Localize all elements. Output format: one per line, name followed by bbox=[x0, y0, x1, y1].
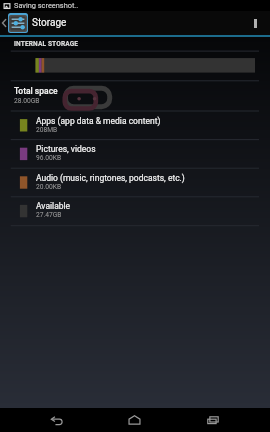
staticText: Pictures, videos bbox=[36, 144, 96, 154]
button[interactable]: Audio (music, ringtones, podcasts, etc.) bbox=[0, 169, 270, 197]
staticText: 28.00GB bbox=[14, 97, 40, 105]
staticText: Apps (app data & media content) bbox=[36, 116, 161, 126]
staticText: Saving screenshot.. bbox=[14, 1, 79, 10]
staticText: 208MB bbox=[36, 126, 58, 134]
staticText: 20.00KB bbox=[36, 183, 62, 191]
staticText: 96.00KB bbox=[36, 154, 62, 162]
button[interactable]: Available bbox=[0, 197, 270, 225]
button[interactable]: Navigate up bbox=[0, 11, 28, 35]
button[interactable]: Total space bbox=[0, 81, 270, 110]
staticText: Total space bbox=[14, 86, 58, 96]
button[interactable]: Back bbox=[34, 408, 78, 432]
staticText: Audio (music, ringtones, podcasts, etc.) bbox=[36, 173, 185, 183]
button[interactable]: Apps (app data & media content) bbox=[0, 112, 270, 140]
staticText: Storage bbox=[32, 17, 67, 29]
button[interactable]: Home bbox=[112, 408, 156, 432]
button[interactable]: Recent apps bbox=[191, 408, 235, 432]
staticText: INTERNAL STORAGE bbox=[14, 40, 79, 48]
staticText: 27.47GB bbox=[36, 211, 62, 219]
button[interactable]: More options bbox=[246, 11, 264, 35]
button[interactable]: Pictures, videos bbox=[0, 140, 270, 168]
staticText: Available bbox=[36, 201, 71, 211]
